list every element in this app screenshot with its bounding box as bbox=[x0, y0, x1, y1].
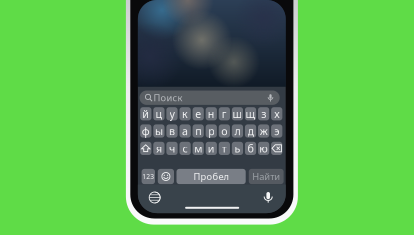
staticText: т bbox=[222, 141, 227, 155]
button[interactable]: ы bbox=[138, 0, 286, 213]
staticText: р bbox=[208, 124, 214, 138]
staticText: н bbox=[208, 107, 215, 121]
button[interactable]: л bbox=[138, 0, 286, 213]
staticText: у bbox=[169, 107, 174, 121]
staticText: э bbox=[274, 124, 279, 138]
button[interactable]: в bbox=[138, 0, 286, 213]
button[interactable]: р bbox=[138, 0, 286, 213]
staticText: д bbox=[247, 124, 253, 138]
button[interactable]: Пробел bbox=[138, 0, 286, 213]
button[interactable]: ю bbox=[138, 0, 286, 213]
button[interactable]: у bbox=[138, 0, 286, 213]
button[interactable]: б bbox=[138, 0, 286, 213]
staticText: с bbox=[183, 141, 188, 155]
staticText: г bbox=[222, 107, 227, 121]
button[interactable]: я bbox=[138, 0, 286, 213]
staticText: о bbox=[221, 124, 227, 138]
button[interactable]: и bbox=[138, 0, 286, 213]
button[interactable]: к bbox=[138, 0, 286, 213]
staticText: в bbox=[169, 124, 175, 138]
button[interactable]: т bbox=[138, 0, 286, 213]
staticText: б bbox=[247, 141, 253, 155]
staticText: к bbox=[182, 107, 188, 121]
staticText: м bbox=[194, 141, 202, 155]
button[interactable]: й bbox=[138, 0, 286, 213]
staticText: ь bbox=[234, 141, 240, 155]
button[interactable]: с bbox=[138, 0, 286, 213]
button[interactable]: х bbox=[138, 0, 286, 213]
button[interactable]: Найти bbox=[138, 0, 286, 213]
button[interactable]: ц bbox=[138, 0, 286, 213]
staticText: я bbox=[156, 141, 162, 155]
staticText: ш bbox=[232, 107, 242, 121]
button[interactable]: щ bbox=[138, 0, 286, 213]
button[interactable]: Emoji bbox=[138, 0, 286, 213]
button[interactable]: а bbox=[138, 0, 286, 213]
staticText: и bbox=[208, 141, 215, 155]
button[interactable]: ф bbox=[138, 0, 286, 213]
button[interactable]: ь bbox=[138, 0, 286, 213]
staticText: Поиск bbox=[153, 91, 182, 104]
staticText: ж bbox=[260, 124, 268, 138]
staticText: е bbox=[195, 107, 201, 121]
staticText: ц bbox=[155, 107, 162, 121]
staticText: з bbox=[261, 107, 266, 121]
staticText: п bbox=[195, 124, 201, 138]
staticText: ф bbox=[142, 124, 150, 138]
staticText: х bbox=[274, 107, 279, 121]
staticText: ю bbox=[259, 141, 268, 155]
button[interactable]: Поиск bbox=[138, 0, 286, 213]
button[interactable]: э bbox=[138, 0, 286, 213]
button[interactable]: д bbox=[138, 0, 286, 213]
staticText: ч bbox=[169, 141, 175, 155]
button[interactable]: о bbox=[138, 0, 286, 213]
button[interactable]: 123 bbox=[138, 0, 286, 213]
button[interactable]: п bbox=[138, 0, 286, 213]
staticText: щ bbox=[245, 107, 255, 121]
button[interactable]: ч bbox=[138, 0, 286, 213]
staticText: 123 bbox=[142, 172, 154, 181]
button[interactable]: Delete bbox=[138, 0, 286, 213]
button[interactable]: Shift bbox=[138, 0, 286, 213]
staticText: ы bbox=[155, 124, 163, 138]
button[interactable]: ж bbox=[138, 0, 286, 213]
button[interactable]: е bbox=[138, 0, 286, 213]
button[interactable]: з bbox=[138, 0, 286, 213]
button[interactable]: г bbox=[138, 0, 286, 213]
staticText: Пробел bbox=[194, 170, 229, 183]
staticText: й bbox=[142, 107, 149, 121]
button[interactable]: н bbox=[138, 0, 286, 213]
staticText: л bbox=[234, 124, 240, 138]
button[interactable]: ш bbox=[138, 0, 286, 213]
button[interactable]: м bbox=[138, 0, 286, 213]
button[interactable]: Next keyboard bbox=[138, 0, 286, 213]
staticText: Найти bbox=[252, 170, 280, 183]
staticText: а bbox=[182, 124, 188, 138]
button[interactable]: Dictation bbox=[138, 0, 286, 213]
